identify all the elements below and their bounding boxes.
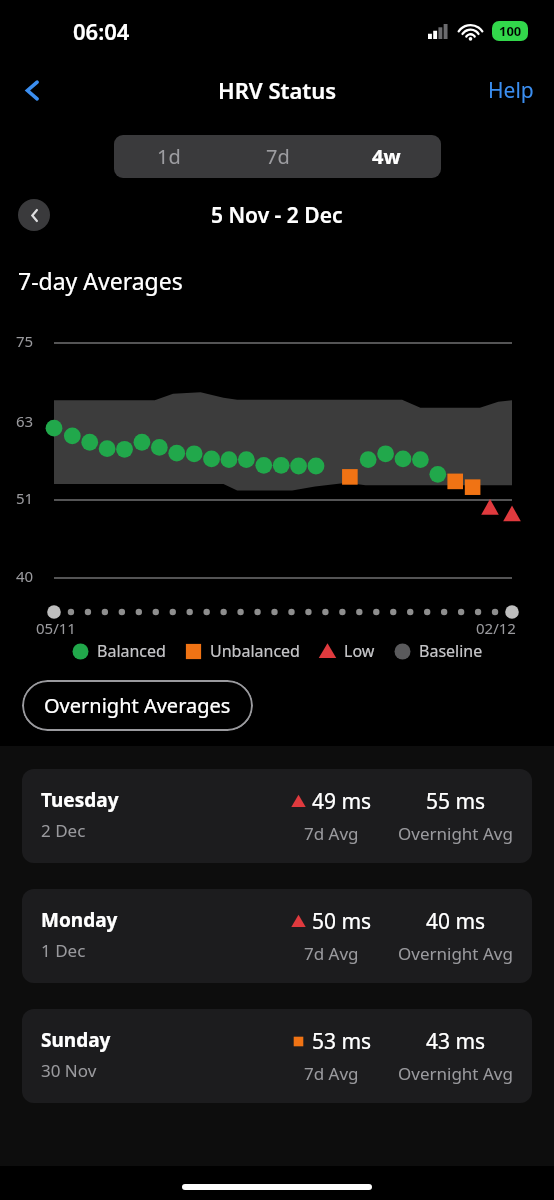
staticText: Overnight Avg [398,942,513,965]
staticText: Overnight Avg [398,822,513,845]
button[interactable]: Sunday [22,1009,532,1103]
staticText: 06:04 [73,16,130,46]
staticText: Help [488,76,534,105]
staticText: 1d [157,143,181,170]
staticText: 7-day Averages [18,265,183,296]
staticText: 7d [266,143,290,170]
staticText: 100 [499,22,522,40]
button[interactable]: Previous period [18,199,50,231]
staticText: 30 Nov [41,1059,97,1082]
staticText: 63 [16,411,34,431]
staticText: 2 Dec [41,819,86,842]
staticText: 05/11 [36,618,76,638]
staticText: Monday [41,907,118,933]
staticText: 4w [372,143,401,170]
button[interactable]: 4w [332,135,441,178]
staticText: Tuesday [41,787,119,813]
button[interactable]: Tuesday [22,769,532,863]
staticText: 55 ms [426,787,486,816]
button[interactable]: Back [8,66,56,114]
button[interactable]: 7d [223,135,332,178]
staticText: 50 ms [312,907,372,936]
staticText: 1 Dec [41,939,86,962]
button[interactable]: 1d [114,135,223,178]
staticText: Baseline [419,640,483,662]
staticText: Overnight Avg [398,1062,513,1085]
button[interactable]: Overnight Averages [22,680,253,731]
staticText: 53 ms [312,1027,372,1056]
staticText: 5 Nov - 2 Dec [211,201,343,230]
staticText: 51 [16,488,34,508]
staticText: Unbalanced [210,640,300,662]
button[interactable]: Monday [22,889,532,983]
staticText: Low [344,640,375,662]
staticText: Balanced [97,640,166,662]
staticText: 7d Avg [304,822,359,845]
staticText: HRV Status [218,75,337,105]
staticText: Sunday [41,1027,111,1053]
staticText: 02/12 [476,618,516,638]
staticText: Overnight Averages [44,692,231,719]
staticText: 40 ms [426,907,486,936]
staticText: 75 [16,331,34,351]
staticText: 49 ms [312,787,372,816]
staticText: 7d Avg [304,1062,359,1085]
button[interactable]: Help [480,68,542,113]
staticText: 40 [16,566,34,586]
staticText: 7d Avg [304,942,359,965]
staticText: 43 ms [426,1027,486,1056]
